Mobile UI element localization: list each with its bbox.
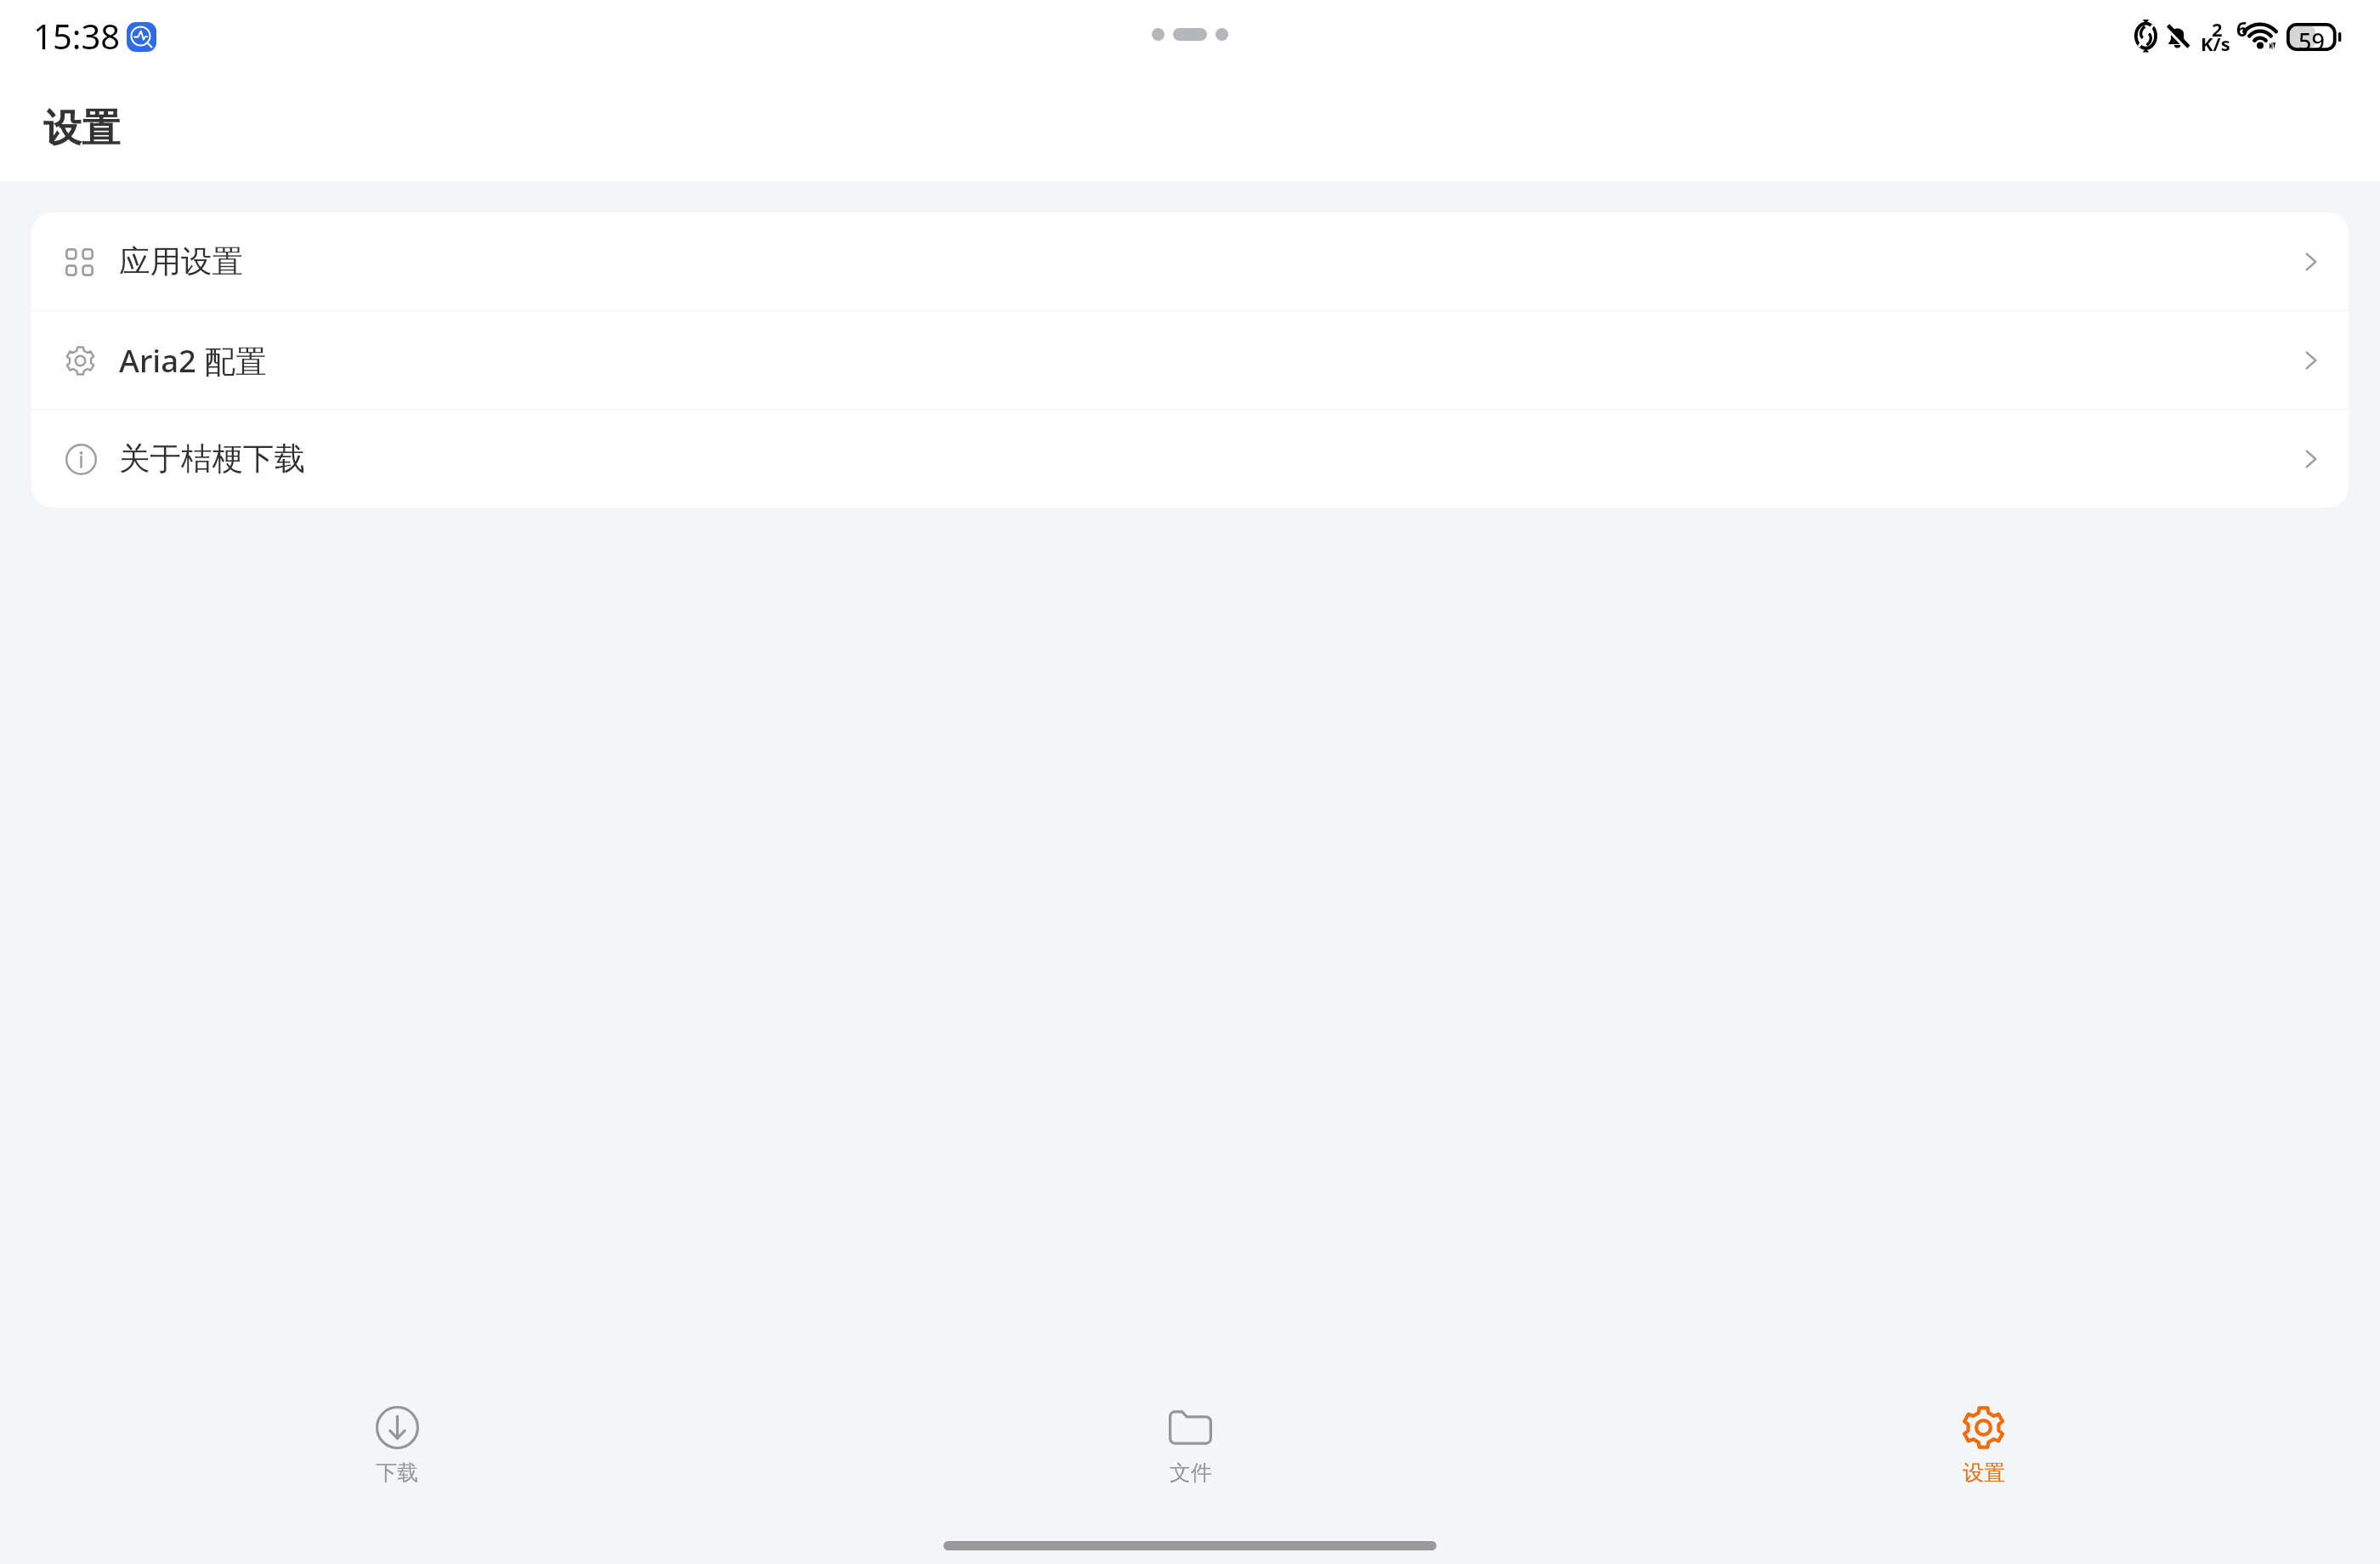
- staticText: 59: [2298, 25, 2325, 54]
- staticText: 设置: [1963, 1459, 2005, 1486]
- staticText: 2: [2212, 16, 2223, 42]
- other: Data saver: [2135, 21, 2156, 49]
- button[interactable]: 下载: [0, 1377, 794, 1521]
- staticText: 下载: [376, 1459, 418, 1486]
- button[interactable]: 设置: [1587, 1377, 2380, 1521]
- staticText: Aria2 配置: [119, 339, 267, 382]
- staticText: 关于桔梗下载: [119, 439, 305, 479]
- staticText: 应用设置: [119, 242, 243, 281]
- button[interactable]: 关于桔梗下载: [31, 410, 2349, 507]
- button[interactable]: 应用设置: [31, 212, 2349, 310]
- staticText: 设置: [43, 105, 120, 153]
- staticText: 6: [2236, 15, 2248, 42]
- button[interactable]: Aria2 配置: [31, 311, 2349, 409]
- staticText: 15:38: [33, 13, 121, 59]
- staticText: 文件: [1170, 1459, 1212, 1486]
- button[interactable]: 文件: [794, 1377, 1587, 1521]
- staticText: K/s: [2201, 31, 2230, 56]
- other: Silent mode: [2166, 25, 2190, 50]
- other: Wi-Fi: [2246, 24, 2275, 51]
